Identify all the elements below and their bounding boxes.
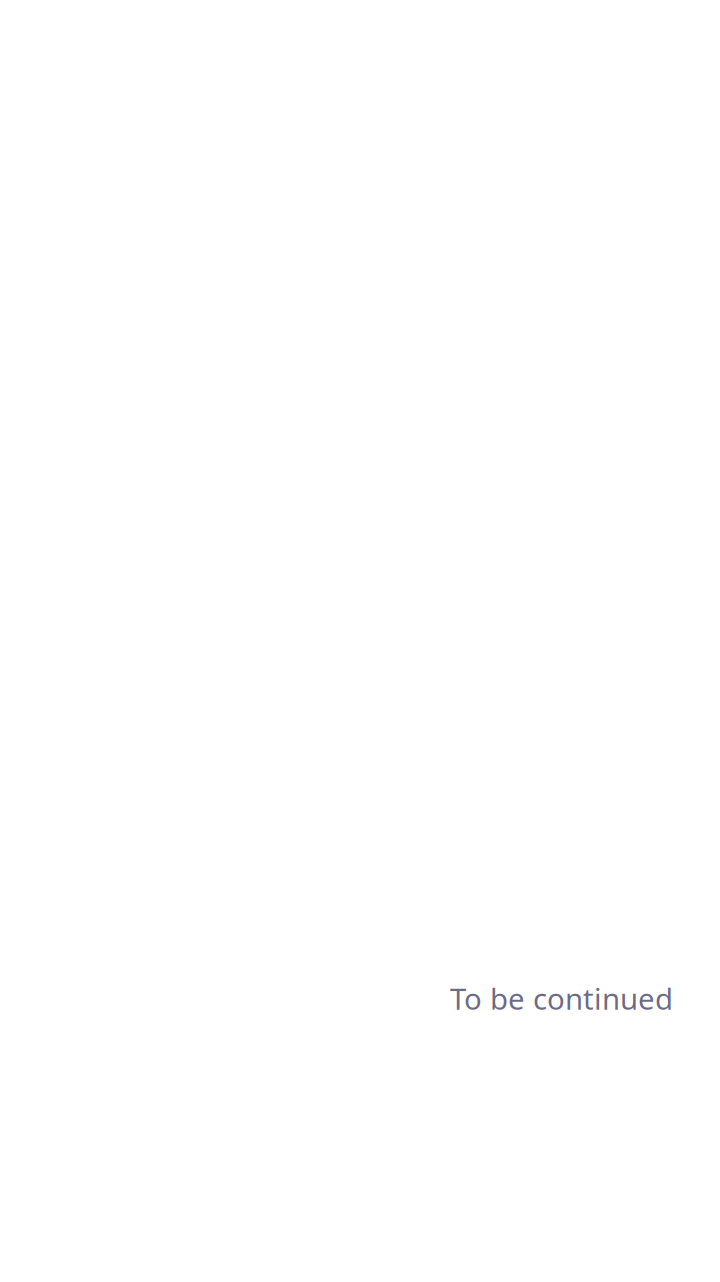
staticText: To be continued	[450, 979, 673, 1018]
